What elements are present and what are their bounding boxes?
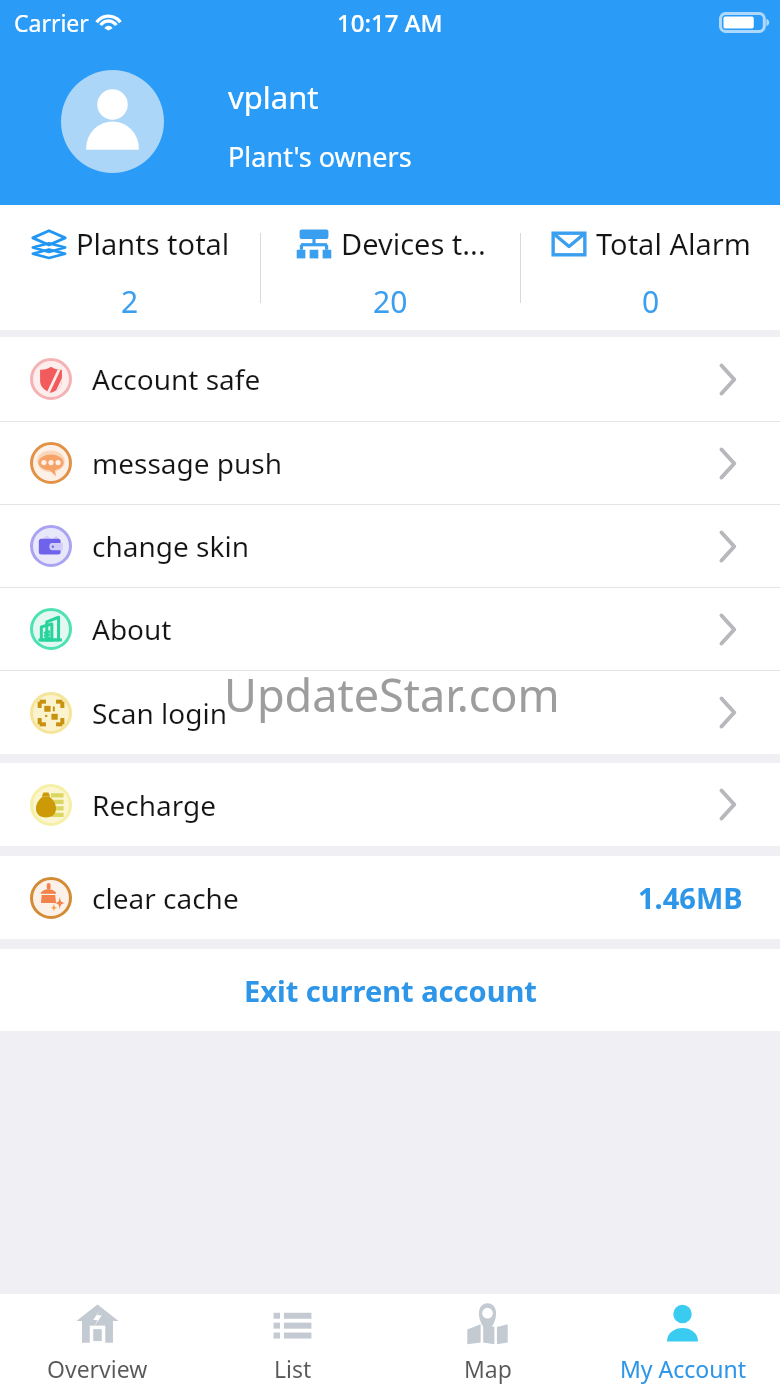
button[interactable]: change skin	[0, 505, 780, 587]
staticText: 2	[121, 281, 139, 322]
staticText: clear cache	[92, 879, 239, 917]
staticText: 0	[642, 281, 660, 322]
button[interactable]: Scan login	[0, 671, 780, 754]
staticText: Plants total	[76, 224, 230, 263]
staticText: 1.46MB	[638, 878, 743, 917]
button[interactable]: Plants total	[0, 205, 260, 330]
staticText: vplant	[228, 76, 319, 118]
staticText: Overview	[47, 1353, 148, 1384]
staticText: Devices t...	[341, 224, 486, 263]
staticText: change skin	[92, 527, 249, 565]
staticText: Recharge	[92, 786, 216, 824]
staticText: message push	[92, 444, 283, 482]
staticText: Account safe	[92, 360, 261, 398]
button[interactable]: Recharge	[0, 763, 780, 846]
button[interactable]: About	[0, 588, 780, 670]
staticText: Total Alarm	[596, 224, 751, 263]
staticText: List	[274, 1353, 312, 1384]
button[interactable]: My Account	[585, 1294, 780, 1387]
staticText: Carrier	[14, 7, 89, 38]
staticText: Scan login	[92, 694, 228, 732]
button[interactable]: Devices t...	[261, 205, 520, 330]
staticText: Exit current account	[244, 971, 537, 1010]
other: Profile photo	[61, 70, 164, 173]
button[interactable]: clear cache	[0, 856, 780, 939]
button[interactable]: Account safe	[0, 337, 780, 421]
staticText: My Account	[620, 1353, 746, 1384]
button[interactable]: Map	[390, 1294, 585, 1387]
button[interactable]: Total Alarm	[521, 205, 780, 330]
staticText: 20	[373, 281, 408, 322]
button[interactable]: message push	[0, 422, 780, 504]
button[interactable]: Profile photo	[0, 70, 780, 173]
staticText: UpdateStar.com	[224, 664, 560, 725]
staticText: 10:17 AM	[337, 6, 443, 39]
staticText: Map	[464, 1353, 512, 1384]
staticText: Plant's owners	[228, 138, 412, 175]
button[interactable]: List	[195, 1294, 390, 1387]
staticText: About	[92, 610, 172, 648]
button[interactable]: Exit current account	[0, 949, 780, 1031]
button[interactable]: Overview	[0, 1294, 195, 1387]
